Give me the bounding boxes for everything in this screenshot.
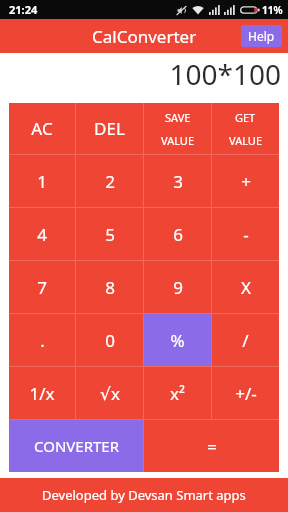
button[interactable]: 3	[144, 155, 211, 207]
staticText: =	[207, 435, 217, 458]
staticText: 1	[37, 170, 47, 193]
button[interactable]: x²	[144, 367, 211, 419]
button[interactable]: /	[212, 314, 279, 366]
button[interactable]: GET	[212, 103, 279, 154]
staticText: Developed by Devsan Smart apps	[42, 486, 246, 504]
staticText: Help	[248, 28, 275, 44]
button[interactable]: 8	[76, 261, 143, 313]
staticText: 6	[173, 223, 183, 246]
staticText: SAVE	[165, 110, 191, 125]
staticText: 9	[173, 276, 183, 299]
button[interactable]: 9	[144, 261, 211, 313]
staticText: X	[241, 276, 251, 299]
button[interactable]: +	[212, 155, 279, 207]
staticText: 0	[105, 329, 115, 352]
staticText: +/-	[235, 382, 257, 405]
staticText: 3	[173, 170, 183, 193]
staticText: 1/x	[29, 382, 55, 405]
staticText: 11%	[262, 3, 283, 17]
staticText: CalConverter	[92, 25, 197, 48]
button[interactable]: .	[9, 314, 75, 366]
button[interactable]: +/-	[212, 367, 279, 419]
button[interactable]: 5	[76, 208, 143, 260]
staticText: 7	[37, 276, 47, 299]
button[interactable]: SAVE	[144, 103, 211, 154]
button[interactable]: CONVERTER	[9, 420, 143, 472]
staticText: DEL	[94, 117, 125, 140]
button[interactable]: DEL	[76, 103, 143, 154]
button[interactable]: Help	[241, 25, 282, 47]
staticText: GET	[235, 110, 256, 125]
staticText: 100*100	[169, 55, 281, 93]
staticText: AC	[31, 117, 53, 140]
staticText: x²	[170, 382, 185, 405]
staticText: .	[40, 329, 45, 352]
button[interactable]: 6	[144, 208, 211, 260]
button[interactable]: %	[144, 314, 211, 366]
button[interactable]: 4	[9, 208, 75, 260]
staticText: 4	[37, 223, 47, 246]
button[interactable]: 2	[76, 155, 143, 207]
staticText: 5	[105, 223, 115, 246]
button[interactable]: 1/x	[9, 367, 75, 419]
button[interactable]: -	[212, 208, 279, 260]
button[interactable]: 0	[76, 314, 143, 366]
button[interactable]: 1	[9, 155, 75, 207]
staticText: 8	[105, 276, 115, 299]
button[interactable]: =	[144, 420, 279, 472]
staticText: 2	[105, 170, 115, 193]
button[interactable]: √x	[76, 367, 143, 419]
button[interactable]: AC	[9, 103, 75, 154]
staticText: √x	[100, 382, 120, 405]
staticText: CONVERTER	[34, 436, 119, 456]
staticText: %	[170, 329, 185, 352]
button[interactable]: X	[212, 261, 279, 313]
staticText: +	[241, 170, 251, 193]
button[interactable]: 7	[9, 261, 75, 313]
staticText: -	[243, 223, 249, 246]
staticText: VALUE	[161, 133, 194, 148]
staticText: /	[242, 329, 249, 352]
staticText: 21:24	[9, 2, 38, 17]
staticText: VALUE	[229, 133, 262, 148]
